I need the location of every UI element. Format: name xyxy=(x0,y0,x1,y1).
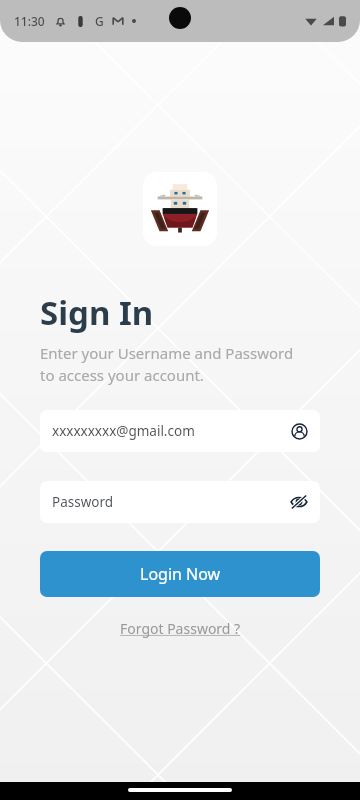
button[interactable]: Login Now xyxy=(40,551,320,597)
staticText: 11:30 xyxy=(14,13,45,29)
staticText: G xyxy=(95,13,104,29)
button[interactable]: xxxxxxxxx@gmail.com xyxy=(40,410,320,452)
staticText: Password xyxy=(52,493,114,511)
button[interactable]: Show password xyxy=(288,491,310,513)
staticText: Forgot Password ? xyxy=(120,619,241,638)
staticText: Sign In xyxy=(40,290,154,335)
staticText: Enter your Username and Password to acce… xyxy=(40,343,294,386)
staticText: Login Now xyxy=(140,563,221,585)
staticText: xxxxxxxxx@gmail.com xyxy=(52,422,195,440)
button[interactable]: Account xyxy=(288,420,310,442)
button[interactable]: Password xyxy=(40,481,320,523)
button[interactable]: Forgot Password ? xyxy=(114,615,247,642)
